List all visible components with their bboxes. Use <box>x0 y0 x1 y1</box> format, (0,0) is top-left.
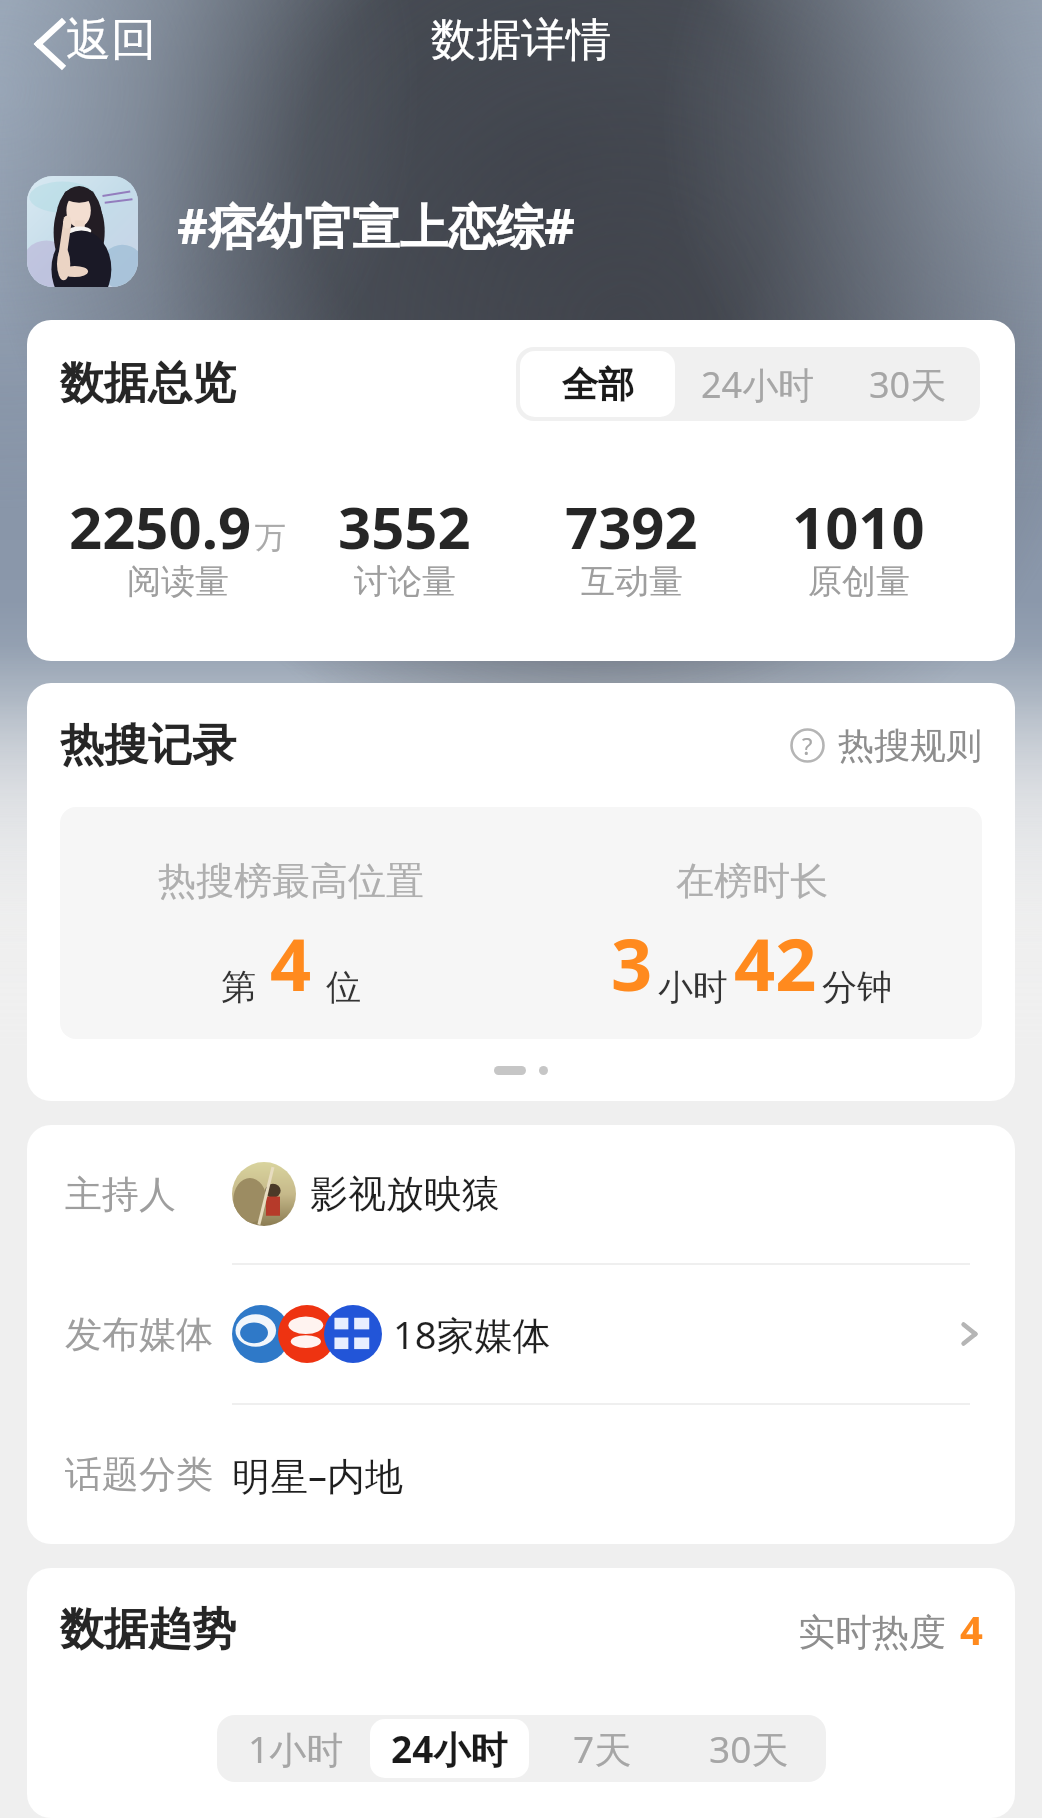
staticText: 热搜榜最高位置 <box>158 857 424 905</box>
staticText: 发布媒体 <box>65 1311 213 1358</box>
staticText: 24小时 <box>701 360 815 409</box>
staticText: 返回 <box>66 12 156 69</box>
staticText: 热搜规则 <box>838 723 982 768</box>
staticText: 数据详情 <box>431 12 611 69</box>
staticText: 3552 <box>338 487 471 566</box>
staticText: 24小时 <box>391 1723 508 1774</box>
staticText: 30天 <box>869 360 947 409</box>
staticText: 数据趋势 <box>60 1602 236 1657</box>
staticText: 1小时 <box>248 1723 344 1774</box>
staticText: 热搜记录 <box>60 718 236 773</box>
staticText: 影视放映猿 <box>310 1170 500 1218</box>
staticText: 3 <box>611 914 653 1012</box>
staticText: 18家媒体 <box>393 1308 551 1360</box>
button[interactable]: 24小时 <box>370 1719 529 1778</box>
button[interactable]: 7天 <box>529 1719 675 1778</box>
button[interactable]: 全部 <box>520 351 675 417</box>
button[interactable]: 主持人 <box>27 1125 1015 1265</box>
staticText: 4 <box>960 1602 983 1656</box>
staticText: ? <box>802 729 813 762</box>
button[interactable]: 30天 <box>840 351 976 417</box>
staticText: 数据总览 <box>60 356 236 411</box>
button[interactable]: 返回 <box>28 5 164 82</box>
button[interactable]: 24小时 <box>675 351 840 417</box>
staticText: 1010 <box>792 487 925 566</box>
staticText: 第 <box>221 965 256 1009</box>
button[interactable]: 话题分类 <box>27 1405 1015 1544</box>
staticText: 讨论量 <box>354 560 456 603</box>
staticText: 万 <box>255 518 286 557</box>
button[interactable]: 30天 <box>675 1719 822 1778</box>
button[interactable]: 发布媒体 <box>27 1265 1015 1405</box>
staticText: 7392 <box>565 487 698 566</box>
staticText: 2250.9 <box>69 487 252 566</box>
staticText: 实时热度 <box>798 1609 946 1656</box>
staticText: 30天 <box>709 1723 789 1774</box>
button[interactable]: 1小时 <box>221 1719 370 1778</box>
staticText: 在榜时长 <box>676 857 828 905</box>
staticText: 42 <box>734 914 817 1012</box>
staticText: 主持人 <box>65 1171 176 1218</box>
staticText: 小时 <box>658 965 728 1009</box>
staticText: 互动量 <box>581 560 683 603</box>
staticText: 全部 <box>562 362 634 407</box>
other: More media <box>953 1318 985 1350</box>
staticText: #痞幼官宣上恋综# <box>177 193 576 259</box>
staticText: 阅读量 <box>127 560 229 603</box>
staticText: 4 <box>270 914 312 1012</box>
staticText: 话题分类 <box>65 1451 213 1498</box>
button[interactable]: ? <box>784 717 988 774</box>
staticText: 7天 <box>573 1723 632 1774</box>
staticText: 明星–内地 <box>232 1449 404 1501</box>
staticText: 位 <box>326 965 361 1009</box>
staticText: 分钟 <box>822 965 892 1009</box>
staticText: 原创量 <box>808 560 910 603</box>
